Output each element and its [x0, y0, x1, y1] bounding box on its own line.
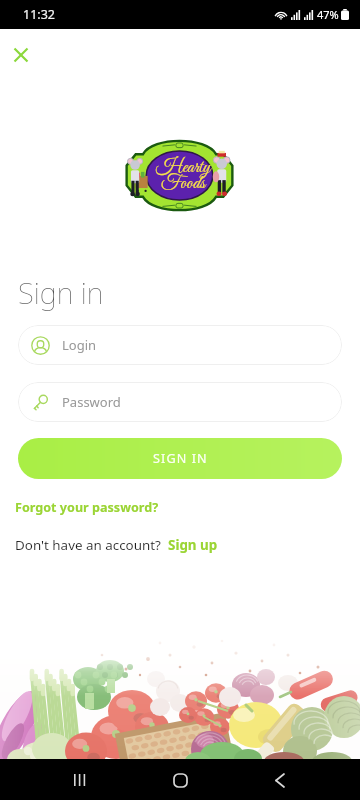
- button[interactable]: SIGN IN: [18, 438, 342, 479]
- button[interactable]: Sign up: [168, 536, 218, 554]
- staticText: SIGN IN: [153, 450, 208, 467]
- staticText: Password: [62, 393, 121, 411]
- staticText: Sign in: [18, 273, 104, 312]
- staticText: Login: [62, 336, 97, 354]
- button[interactable]: Close: [7, 41, 35, 69]
- staticText: Hearty: [156, 156, 211, 180]
- button[interactable]: Login: [18, 325, 342, 365]
- staticText: 11:32: [23, 6, 55, 23]
- staticText: Sign up: [168, 536, 218, 554]
- button[interactable]: Back: [260, 760, 300, 800]
- button[interactable]: Recent apps: [60, 760, 100, 800]
- button[interactable]: Password: [18, 382, 342, 422]
- staticText: Don't have an account?: [15, 536, 161, 554]
- staticText: Foods: [161, 172, 206, 196]
- button[interactable]: Home: [160, 760, 200, 800]
- button[interactable]: Forgot your password?: [15, 499, 159, 516]
- staticText: Forgot your password?: [15, 499, 159, 516]
- staticText: 47%: [317, 7, 339, 22]
